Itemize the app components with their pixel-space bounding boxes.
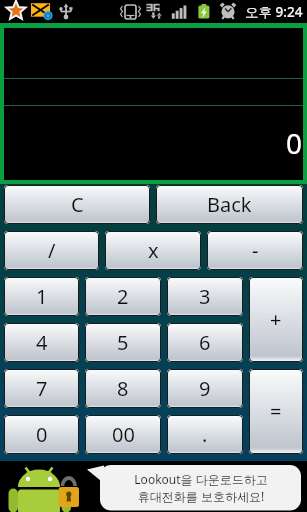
button[interactable]: .	[167, 415, 243, 454]
staticText: x	[148, 237, 159, 264]
staticText: 5	[117, 329, 129, 356]
button[interactable]: Back	[156, 185, 303, 224]
staticText: 00	[112, 421, 135, 448]
button[interactable]: 4	[4, 323, 79, 362]
button[interactable]: 0	[4, 415, 79, 454]
button[interactable]: =	[249, 369, 303, 454]
staticText: 1	[36, 283, 48, 310]
button[interactable]: 2	[85, 277, 161, 316]
staticText: =	[270, 398, 282, 425]
button[interactable]: 5	[85, 323, 161, 362]
button[interactable]: Lookout advertisement	[0, 461, 307, 512]
staticText: 7	[36, 375, 48, 402]
button[interactable]: -	[207, 231, 303, 270]
staticText: 9	[199, 375, 211, 402]
button[interactable]: 6	[167, 323, 243, 362]
staticText: 0	[286, 124, 303, 162]
staticText: 6	[199, 329, 211, 356]
button[interactable]: 1	[4, 277, 79, 316]
staticText: C	[71, 191, 84, 218]
staticText: 0	[36, 421, 48, 448]
staticText: 4	[36, 329, 48, 356]
staticText: 오후 9:24	[245, 3, 303, 21]
button[interactable]: +	[249, 277, 303, 362]
staticText: Lookout을 다운로드하고 휴대전화를 보호하세요!	[134, 471, 268, 505]
staticText: Back	[207, 191, 252, 218]
button[interactable]: C	[4, 185, 150, 224]
button[interactable]: 7	[4, 369, 79, 408]
button[interactable]: /	[4, 231, 99, 270]
staticText: -	[252, 237, 259, 264]
button[interactable]: 9	[167, 369, 243, 408]
staticText: 8	[117, 375, 129, 402]
button[interactable]: x	[105, 231, 201, 270]
staticText: +	[270, 306, 282, 333]
staticText: .	[202, 421, 208, 448]
button[interactable]: 3	[167, 277, 243, 316]
staticText: 2	[117, 283, 129, 310]
button[interactable]: 00	[85, 415, 161, 454]
staticText: 3	[199, 283, 211, 310]
staticText: /	[48, 237, 56, 264]
button[interactable]: 8	[85, 369, 161, 408]
